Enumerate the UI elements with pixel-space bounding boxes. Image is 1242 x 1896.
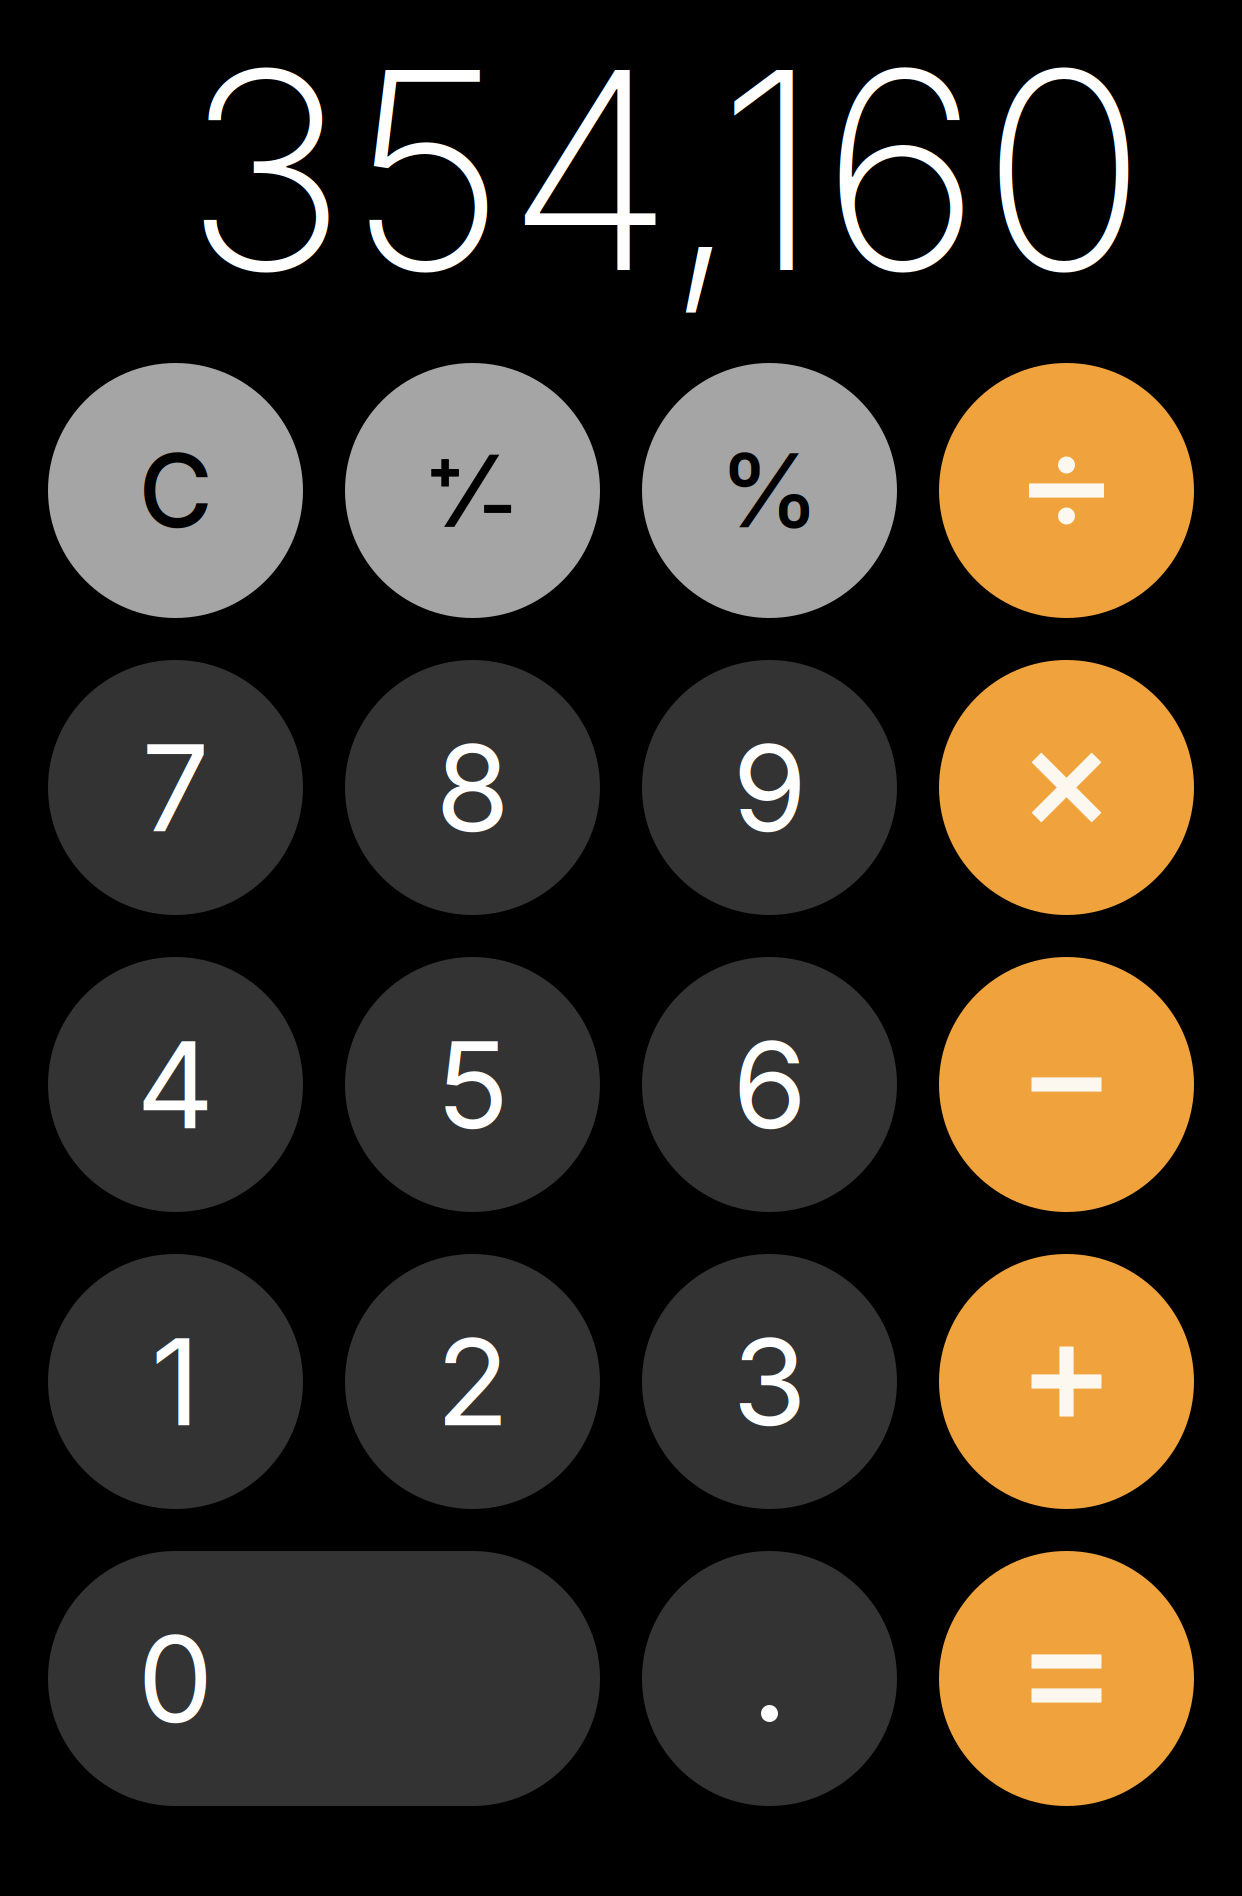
button[interactable]: Toggle sign — [345, 363, 600, 618]
button[interactable]: Equals — [939, 1551, 1194, 1806]
staticText: 4 — [136, 1012, 214, 1157]
staticText: 8 — [435, 715, 509, 860]
staticText: 0 — [137, 1606, 213, 1751]
staticText: 7 — [141, 715, 209, 860]
button[interactable]: 3 — [642, 1254, 897, 1509]
staticText: % — [719, 429, 820, 552]
button[interactable]: Add — [939, 1254, 1194, 1509]
staticText: 354,160 — [184, 4, 1147, 336]
button[interactable]: Multiply — [939, 660, 1194, 915]
button[interactable]: 5 — [345, 957, 600, 1212]
staticText: C — [138, 429, 212, 552]
button[interactable]: 8 — [345, 660, 600, 915]
button[interactable]: Subtract — [939, 957, 1194, 1212]
button[interactable]: 7 — [48, 660, 303, 915]
button[interactable]: Decimal point — [642, 1551, 897, 1806]
staticText: 2 — [436, 1309, 509, 1454]
button[interactable]: 0 — [48, 1551, 600, 1806]
staticText: 1 — [151, 1309, 200, 1454]
button[interactable]: 6 — [642, 957, 897, 1212]
button[interactable]: % — [642, 363, 897, 618]
button[interactable]: 4 — [48, 957, 303, 1212]
button[interactable]: Divide — [939, 363, 1194, 618]
button[interactable]: 2 — [345, 1254, 600, 1509]
button[interactable]: C — [48, 363, 303, 618]
button[interactable]: 9 — [642, 660, 897, 915]
staticText: 6 — [732, 1012, 806, 1157]
button[interactable]: 1 — [48, 1254, 303, 1509]
staticText: 5 — [436, 1012, 509, 1157]
staticText: 9 — [732, 715, 806, 860]
staticText: 3 — [732, 1309, 806, 1454]
